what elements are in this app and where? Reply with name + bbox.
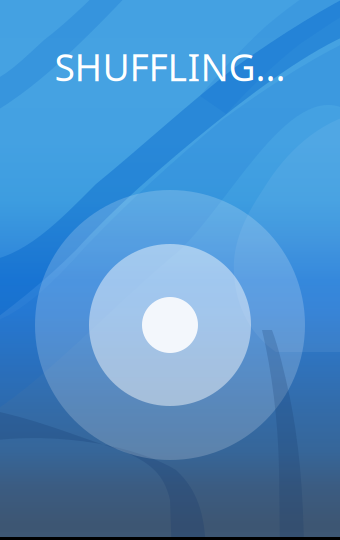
staticText: SHUFFLING... <box>54 42 285 92</box>
